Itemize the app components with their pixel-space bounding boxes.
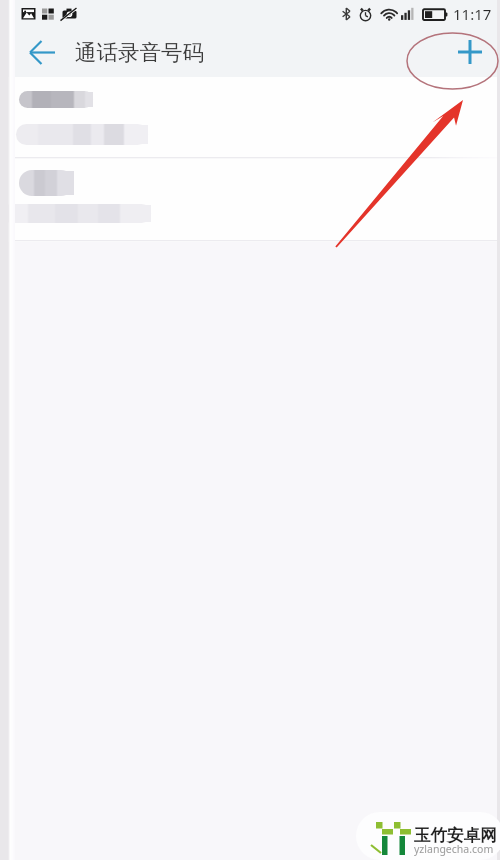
staticText: yzlangecha.com (414, 842, 494, 856)
button[interactable]: Add (448, 30, 492, 74)
button[interactable] (0, 77, 500, 157)
staticText: 玉竹安卓网 (414, 825, 497, 846)
staticText: 11:17 (453, 4, 492, 24)
button[interactable] (0, 158, 500, 241)
staticText: 通话录音号码 (75, 39, 204, 66)
button[interactable]: Back (17, 32, 57, 72)
